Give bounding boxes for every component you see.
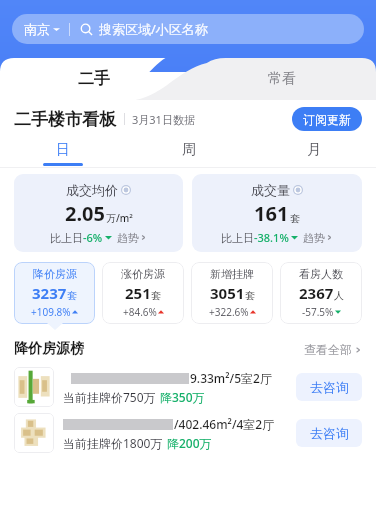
staticText: -57.5% — [302, 305, 334, 319]
staticText: 趋势 — [303, 231, 325, 245]
staticText: 月 — [307, 141, 321, 159]
button[interactable]: 查看全部 — [304, 342, 362, 357]
button[interactable]: 降价房源 — [14, 262, 95, 324]
staticText: 降200万 — [167, 435, 212, 451]
staticText: +109.8% — [31, 305, 71, 319]
staticText: 成交量 — [251, 182, 290, 198]
staticText: 二手楼市看板 — [14, 109, 116, 130]
staticText: 161 — [254, 200, 289, 227]
staticText: 搜索区域/小区名称 — [99, 20, 208, 38]
button[interactable]: 南京 — [12, 14, 364, 44]
staticText: 3237 — [32, 283, 67, 303]
button[interactable]: 日 — [0, 138, 126, 168]
button[interactable]: 二手 — [0, 58, 188, 100]
staticText: 3月31日数据 — [132, 112, 195, 127]
staticText: 看房人数 — [299, 267, 343, 281]
staticText: 9.33m²/5室2厅 — [190, 370, 272, 386]
button[interactable]: 涨价房源 — [102, 262, 184, 324]
staticText: 降价房源 — [33, 267, 77, 281]
staticText: 人 — [334, 289, 344, 302]
staticText: 订阅更新 — [303, 112, 351, 127]
button[interactable]: 新增挂牌 — [191, 262, 273, 324]
staticText: 当前挂牌价750万 — [63, 389, 156, 405]
button[interactable]: 9.33m²/5室2厅 — [0, 364, 376, 410]
staticText: 成交均价 — [66, 182, 118, 198]
staticText: 2367 — [299, 283, 334, 303]
button[interactable]: 订阅更新 — [292, 107, 362, 131]
button[interactable]: /402.46m²/4室2厅 — [0, 410, 376, 456]
button[interactable]: 去咨询 — [296, 419, 362, 447]
staticText: 趋势 — [117, 231, 139, 245]
button[interactable]: 去咨询 — [296, 373, 362, 401]
staticText: 日 — [56, 141, 70, 159]
staticText: 套 — [245, 289, 255, 302]
staticText: 周 — [182, 141, 196, 159]
staticText: 新增挂牌 — [210, 267, 254, 281]
staticText: 南京 — [24, 21, 50, 37]
staticText: 查看全部 — [304, 342, 352, 357]
staticText: 二手 — [78, 69, 110, 89]
staticText: 常看 — [268, 70, 296, 88]
staticText: 去咨询 — [310, 379, 349, 395]
button[interactable]: 月 — [251, 138, 376, 168]
staticText: 去咨询 — [310, 425, 349, 441]
button[interactable]: 周 — [126, 138, 251, 168]
staticText: +84.6% — [123, 305, 157, 319]
button[interactable]: 成交量 — [192, 174, 362, 252]
staticText: 比上日 — [221, 231, 254, 245]
staticText: 降价房源榜 — [14, 340, 84, 358]
staticText: -6% — [83, 230, 103, 245]
staticText: -38.1% — [254, 230, 289, 245]
staticText: 涨价房源 — [121, 267, 165, 281]
staticText: 3051 — [210, 283, 245, 303]
staticText: 251 — [125, 283, 151, 303]
staticText: 套 — [151, 289, 161, 302]
staticText: 套 — [67, 289, 77, 302]
staticText: +322.6% — [209, 305, 249, 319]
button[interactable]: 成交均价 — [14, 174, 183, 252]
staticText: 当前挂牌价1800万 — [63, 435, 163, 451]
staticText: 比上日 — [50, 231, 83, 245]
staticText: 套 — [290, 212, 300, 225]
staticText: 万/m² — [106, 211, 133, 225]
button[interactable]: 看房人数 — [280, 262, 362, 324]
staticText: 降350万 — [160, 389, 205, 405]
staticText: /402.46m²/4室2厅 — [174, 416, 275, 432]
button[interactable]: 常看 — [188, 58, 376, 100]
staticText: 2.05 — [65, 200, 105, 227]
